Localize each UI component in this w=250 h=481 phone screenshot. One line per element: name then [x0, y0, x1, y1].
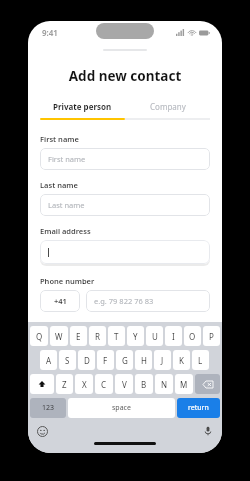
button[interactable]: Q — [30, 326, 48, 346]
button[interactable]: M — [175, 374, 193, 394]
staticText: e.g. 79 822 76 83 — [94, 296, 154, 306]
button[interactable]: V — [115, 374, 133, 394]
staticText: W — [55, 331, 63, 342]
staticText: F — [103, 355, 108, 366]
staticText: 9:41 — [42, 27, 58, 38]
button[interactable]: e.g. 79 822 76 83 — [86, 290, 210, 312]
staticText: return — [188, 403, 209, 413]
staticText: S — [65, 355, 70, 366]
button[interactable]: O — [184, 326, 201, 346]
staticText: Add new contact — [28, 67, 222, 85]
button[interactable]: Emoji — [36, 425, 48, 437]
staticText: Phone number — [40, 276, 95, 286]
staticText: Last name — [40, 180, 78, 190]
staticText: A — [46, 355, 52, 366]
button[interactable]: I — [165, 326, 182, 346]
button[interactable]: F — [97, 350, 114, 370]
staticText: B — [141, 379, 147, 390]
button[interactable]: P — [203, 326, 220, 346]
button[interactable]: D — [78, 350, 95, 370]
staticText: O — [189, 331, 196, 342]
button[interactable]: Dictation — [202, 425, 214, 437]
button[interactable]: R — [89, 326, 106, 346]
staticText: M — [180, 379, 188, 390]
staticText: G — [122, 355, 128, 366]
button[interactable] — [40, 240, 210, 264]
button[interactable]: N — [155, 374, 173, 394]
button[interactable]: Shift — [30, 374, 54, 394]
staticText: First name — [40, 134, 79, 144]
button[interactable]: H — [135, 350, 152, 370]
staticText: K — [179, 355, 184, 366]
button[interactable]: L — [192, 350, 209, 370]
staticText: P — [209, 331, 214, 342]
button[interactable]: W — [50, 326, 68, 346]
staticText: Email address — [40, 226, 91, 236]
button[interactable]: Private person — [40, 99, 125, 113]
staticText: Last name — [48, 200, 85, 210]
staticText: X — [82, 379, 87, 390]
staticText: T — [114, 331, 119, 342]
button[interactable]: First name — [40, 148, 210, 170]
button[interactable]: U — [146, 326, 163, 346]
staticText: 123 — [42, 403, 55, 413]
button[interactable]: T — [108, 326, 125, 346]
button[interactable]: K — [173, 350, 190, 370]
staticText: U — [152, 331, 158, 342]
button[interactable]: Last name — [40, 194, 210, 216]
button[interactable]: 123 — [30, 398, 66, 418]
staticText: Company — [150, 101, 186, 112]
staticText: J — [161, 355, 164, 366]
staticText: First name — [48, 154, 86, 164]
button[interactable]: A — [40, 350, 57, 370]
staticText: E — [76, 331, 81, 342]
staticText: Y — [133, 331, 138, 342]
button[interactable]: S — [59, 350, 76, 370]
button[interactable]: J — [154, 350, 171, 370]
button[interactable]: G — [116, 350, 133, 370]
button[interactable]: X — [75, 374, 93, 394]
staticText: H — [141, 355, 147, 366]
button[interactable]: return — [177, 398, 220, 418]
staticText: Z — [62, 379, 67, 390]
staticText: V — [122, 379, 127, 390]
staticText: D — [84, 355, 90, 366]
button[interactable]: C — [95, 374, 113, 394]
button[interactable]: Company — [125, 99, 210, 113]
staticText: R — [95, 331, 100, 342]
staticText: C — [101, 379, 107, 390]
button[interactable]: Y — [127, 326, 144, 346]
button[interactable]: E — [70, 326, 87, 346]
button[interactable]: Z — [56, 374, 73, 394]
staticText: Q — [36, 331, 43, 342]
button[interactable]: space — [68, 398, 175, 418]
staticText: +41 — [54, 296, 67, 306]
staticText: L — [198, 355, 203, 366]
staticText: N — [161, 379, 168, 390]
staticText: space — [112, 403, 131, 413]
button[interactable]: Backspace — [195, 374, 220, 394]
button[interactable]: B — [135, 374, 153, 394]
staticText: I — [172, 331, 175, 342]
button[interactable]: +41 — [40, 290, 80, 312]
staticText: Private person — [53, 101, 112, 112]
